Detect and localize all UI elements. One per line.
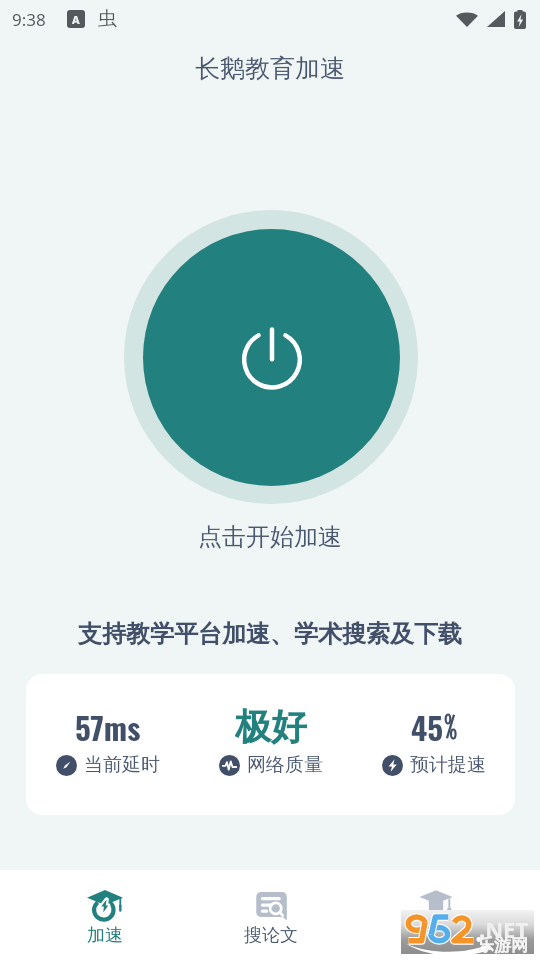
staticText: 45 [411,704,444,748]
staticText: 乐游网 [477,935,528,956]
staticText: 虫 [98,7,117,31]
staticText: 搜论文 [244,924,298,947]
button[interactable]: 搜论文 [188,870,353,947]
staticText: A [72,12,80,27]
staticText: 长鹅教育加速 [195,53,345,84]
staticText: 极好 [235,704,307,748]
button[interactable]: 我的 [353,870,518,947]
staticText: 我的 [418,924,454,947]
staticText: 预计提速 [410,753,486,777]
button[interactable]: 加速 [22,870,188,947]
staticText: 点击开始加速 [198,522,342,552]
staticText: 57ms [75,704,141,748]
staticText: 当前延时 [84,753,160,777]
staticText: 支持教学平台加速、学术搜索及下载 [78,619,462,649]
staticText: 9:38 [12,8,46,31]
staticText: .NET [479,914,529,944]
button[interactable]: 点击开始加速 [124,210,418,504]
staticText: 网络质量 [247,753,323,777]
staticText: 加速 [87,924,123,947]
